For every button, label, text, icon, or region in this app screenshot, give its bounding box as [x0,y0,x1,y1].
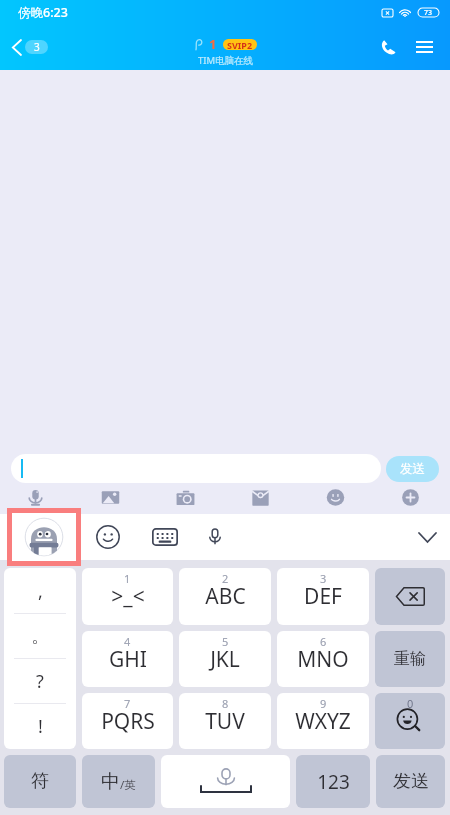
staticText: 发送 [393,770,429,793]
button[interactable]: Voice message [0,486,73,508]
staticText: 9 [320,696,327,711]
staticText: 0 [407,696,414,711]
button[interactable]: Emoji [95,517,121,557]
staticText: >_< [111,582,145,611]
button[interactable]: Gift [223,486,298,508]
staticText: ABC [205,582,246,611]
staticText: 5 [222,634,229,649]
staticText: 1 [209,35,217,53]
button[interactable]: ! [4,704,76,749]
staticText: WXYZ [295,707,351,736]
staticText: /英 [120,777,136,793]
button[interactable]: , [4,568,76,614]
button[interactable]: 重输 [375,631,445,687]
staticText: MNO [297,645,349,674]
button[interactable]: ABC [179,568,271,625]
staticText: 7 [124,696,131,711]
staticText: 2 [222,571,229,586]
staticText: TIM电脑在线 [198,54,254,67]
staticText: 1 [124,571,131,586]
staticText: PQRS [101,707,155,736]
staticText: 傍晚6:23 [18,4,68,21]
button[interactable]: Photo [73,486,148,508]
staticText: 4 [124,634,131,649]
button[interactable]: Keyboard [152,517,178,557]
button[interactable]: 发送 [376,755,445,808]
button[interactable]: Robot sticker pack [7,514,80,560]
staticText: 73 [424,8,433,17]
staticText: 123 [317,769,350,795]
staticText: 中 [101,770,120,794]
button[interactable]: Voice input [205,517,225,557]
button[interactable]: Emoji [298,486,373,508]
button[interactable]: More [373,486,448,508]
button[interactable]: Call [370,24,406,70]
staticText: DEF [304,582,342,611]
staticText: 发送 [400,461,425,477]
staticText: 8 [222,696,229,711]
button[interactable] [375,568,445,625]
staticText: 3 [320,571,327,586]
button[interactable]: ? [4,659,76,704]
staticText: ! [38,714,43,739]
staticText: 符 [31,770,49,793]
button[interactable]: Camera [148,486,223,508]
button[interactable]: MNO [277,631,369,687]
button[interactable]: GHI [82,631,173,687]
button[interactable]: 中 [82,755,155,808]
staticText: ? [36,669,44,694]
button[interactable]: 符 [4,755,76,808]
staticText: 6 [320,634,327,649]
staticText: , [38,579,43,604]
button[interactable]: Space, voice input [161,755,290,808]
button[interactable]: 0 [375,693,445,749]
button[interactable] [11,454,381,483]
button[interactable]: PQRS [82,693,173,749]
button[interactable]: Back, 3 unread [0,24,58,70]
staticText: 重输 [394,649,426,669]
button[interactable]: Menu [406,24,442,70]
button[interactable]: WXYZ [277,693,369,749]
staticText: SVIP2 [227,39,253,50]
button[interactable]: 发送 [386,456,439,482]
staticText: JKL [210,645,240,674]
button[interactable]: Hide keyboard [404,514,450,560]
button[interactable]: 123 [296,755,370,808]
button[interactable]: >_< [82,568,173,625]
button[interactable]: TUV [179,693,271,749]
button[interactable]: 。 [4,614,76,659]
staticText: 。 [31,625,49,648]
staticText: TUV [205,707,245,736]
button[interactable]: JKL [179,631,271,687]
button[interactable]: DEF [277,568,369,625]
staticText: 3 [34,40,40,54]
button[interactable]: Robot sticker pack selected [7,508,81,566]
staticText: GHI [109,645,147,674]
